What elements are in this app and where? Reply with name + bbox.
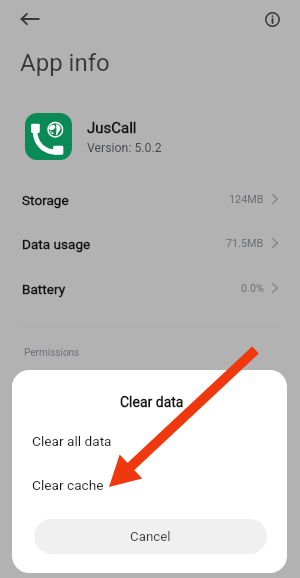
staticText: 124MB bbox=[229, 193, 264, 206]
staticText: Cancel bbox=[130, 529, 171, 545]
staticText: Clear cache bbox=[32, 477, 104, 493]
button[interactable] bbox=[0, 178, 300, 222]
staticText: Version: 5.0.2 bbox=[87, 141, 162, 155]
button[interactable] bbox=[0, 267, 300, 311]
staticText: Battery bbox=[22, 281, 66, 297]
staticText: Clear data bbox=[120, 394, 184, 410]
staticText: 0.0% bbox=[241, 282, 264, 295]
button[interactable] bbox=[0, 222, 300, 266]
staticText: 71.5MB bbox=[226, 237, 264, 250]
staticText: Data usage bbox=[22, 236, 91, 252]
staticText: Permissions bbox=[24, 347, 80, 359]
button[interactable]: Back bbox=[13, 2, 47, 36]
button[interactable] bbox=[12, 459, 287, 503]
button[interactable]: Cancel bbox=[34, 519, 267, 554]
button[interactable] bbox=[12, 415, 287, 459]
staticText: App info bbox=[20, 49, 110, 77]
button[interactable]: App details bbox=[257, 4, 287, 34]
staticText: Clear all data bbox=[32, 433, 112, 449]
staticText: JusCall bbox=[87, 119, 137, 137]
staticText: Storage bbox=[22, 192, 69, 208]
